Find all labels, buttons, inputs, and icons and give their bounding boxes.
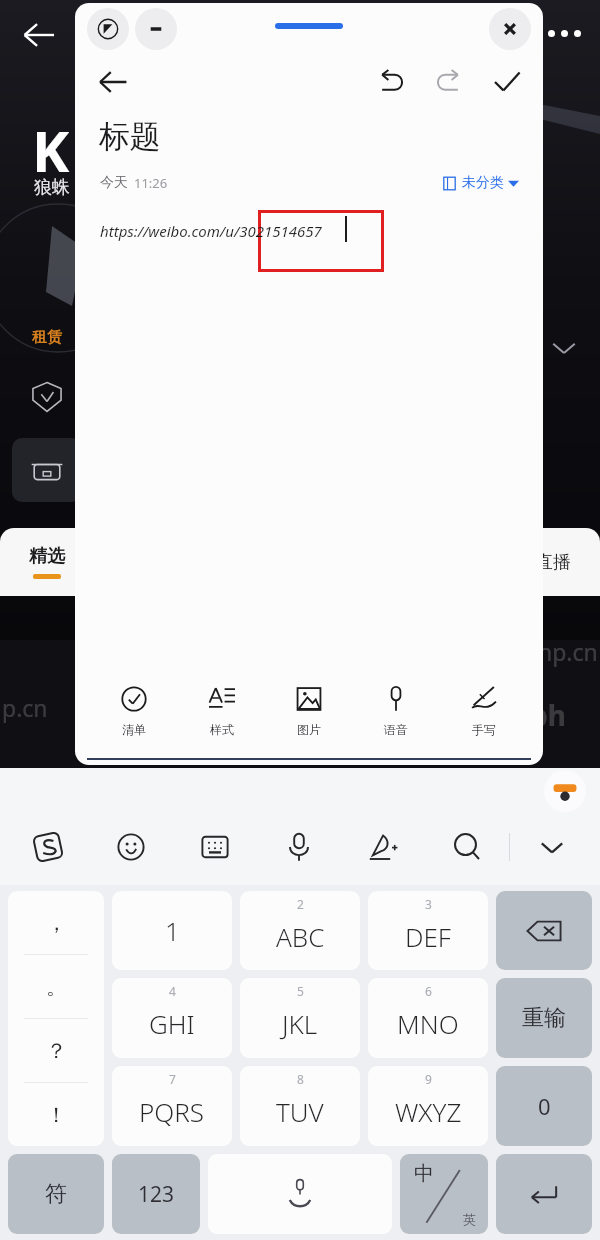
button[interactable]: Undo	[367, 58, 415, 106]
staticText: p.cn	[2, 692, 48, 723]
staticText: 1	[165, 913, 180, 948]
button[interactable]: 未分类	[438, 170, 523, 196]
staticText: 3	[425, 896, 432, 912]
button[interactable]: Expand	[546, 330, 582, 366]
staticText: DEF	[405, 919, 451, 954]
staticText: 未分类	[462, 174, 504, 192]
button[interactable]: 123	[112, 1154, 200, 1234]
staticText: https://weibo.com/u/3021514657	[100, 221, 322, 241]
staticText: TUV	[276, 1094, 324, 1129]
staticText: 重输	[522, 1004, 566, 1032]
staticText: 语音	[384, 722, 408, 737]
button[interactable]: Switch Chinese English	[400, 1154, 488, 1234]
staticText: 租赁	[32, 328, 62, 347]
staticText: PQRS	[139, 1094, 205, 1129]
staticText: 4	[169, 983, 176, 999]
staticText: ？	[46, 1038, 67, 1064]
button[interactable]: Hide keyboard	[510, 809, 594, 885]
button[interactable]: 直播	[506, 528, 600, 596]
staticText: MNO	[397, 1006, 459, 1041]
staticText: 5	[297, 983, 304, 999]
button[interactable]: 3	[368, 891, 488, 970]
button[interactable]: Verified	[28, 378, 66, 416]
button[interactable]: 符	[8, 1154, 104, 1234]
staticText: 2	[297, 896, 304, 912]
staticText: 8	[297, 1071, 304, 1087]
button[interactable]: Assistant	[544, 770, 586, 812]
button[interactable]: 。	[8, 955, 104, 1018]
staticText: 中	[414, 1161, 434, 1186]
staticText: ABC	[276, 919, 325, 954]
button[interactable]: 精选	[0, 528, 94, 596]
staticText: GHI	[149, 1006, 195, 1041]
button[interactable]: 语音	[358, 680, 434, 743]
staticText: 直播	[535, 551, 571, 574]
staticText: hp.cn	[538, 636, 598, 667]
button[interactable]: 7	[112, 1066, 232, 1146]
staticText: 123	[138, 1180, 175, 1209]
button[interactable]: Voice input	[257, 809, 341, 885]
button[interactable]: 4	[112, 978, 232, 1058]
staticText: 图片	[297, 722, 321, 737]
button[interactable]: 清单	[96, 680, 172, 743]
button[interactable]: 9	[368, 1066, 488, 1146]
staticText: 7	[169, 1071, 176, 1087]
staticText: WXYZ	[395, 1094, 462, 1129]
button[interactable]: More options	[536, 18, 592, 48]
button[interactable]: 手写	[446, 680, 522, 743]
button[interactable]: 0	[496, 1066, 592, 1146]
staticText: ！	[46, 1102, 67, 1128]
button[interactable]: 1	[112, 891, 232, 970]
button[interactable]: 5	[240, 978, 360, 1058]
button[interactable]: 样式	[184, 680, 260, 743]
button[interactable]: Theme	[87, 8, 129, 50]
button[interactable]: Emoji	[89, 809, 173, 885]
staticText: ph	[530, 696, 566, 734]
button[interactable]: Search	[425, 809, 509, 885]
button[interactable]: Redo	[425, 58, 473, 106]
button[interactable]: Close	[489, 8, 531, 50]
staticText: 符	[45, 1180, 67, 1208]
button[interactable]: Backspace	[496, 891, 592, 970]
staticText: 样式	[210, 722, 234, 737]
staticText: 。	[46, 974, 67, 1000]
button[interactable]: Done	[483, 58, 531, 106]
staticText: ，	[46, 910, 67, 936]
button[interactable]: Store	[12, 438, 82, 502]
button[interactable]: Minimise	[135, 8, 177, 50]
staticText: 9	[425, 1071, 432, 1087]
staticText: JKL	[282, 1006, 318, 1041]
button[interactable]: Space	[208, 1154, 392, 1234]
staticText: 11:26	[134, 174, 168, 192]
button[interactable]: 8	[240, 1066, 360, 1146]
staticText: K	[32, 112, 70, 188]
staticText: 手写	[472, 722, 496, 737]
button[interactable]: 2	[240, 891, 360, 970]
button[interactable]: Enter	[496, 1154, 592, 1234]
staticText: 0	[538, 1091, 551, 1121]
button[interactable]: Back	[89, 58, 137, 106]
button[interactable]: Handwriting	[341, 809, 425, 885]
button[interactable]: 图片	[271, 680, 347, 743]
staticText: 清单	[122, 722, 146, 737]
staticText: 狼蛛	[34, 176, 70, 199]
button[interactable]: Keyboard layout	[173, 809, 257, 885]
staticText: 标题	[99, 117, 161, 156]
staticText: 今天	[100, 174, 128, 192]
button[interactable]: Back	[10, 6, 68, 64]
button[interactable]: Sogou input method	[6, 809, 89, 885]
staticText: 6	[425, 983, 432, 999]
button[interactable]: 6	[368, 978, 488, 1058]
staticText: 精选	[29, 545, 65, 568]
button[interactable]: ？	[8, 1019, 104, 1082]
staticText: 英	[463, 1211, 476, 1227]
button[interactable]: 重输	[496, 978, 592, 1058]
button[interactable]: ！	[8, 1083, 104, 1146]
button[interactable]: ，	[8, 891, 104, 954]
